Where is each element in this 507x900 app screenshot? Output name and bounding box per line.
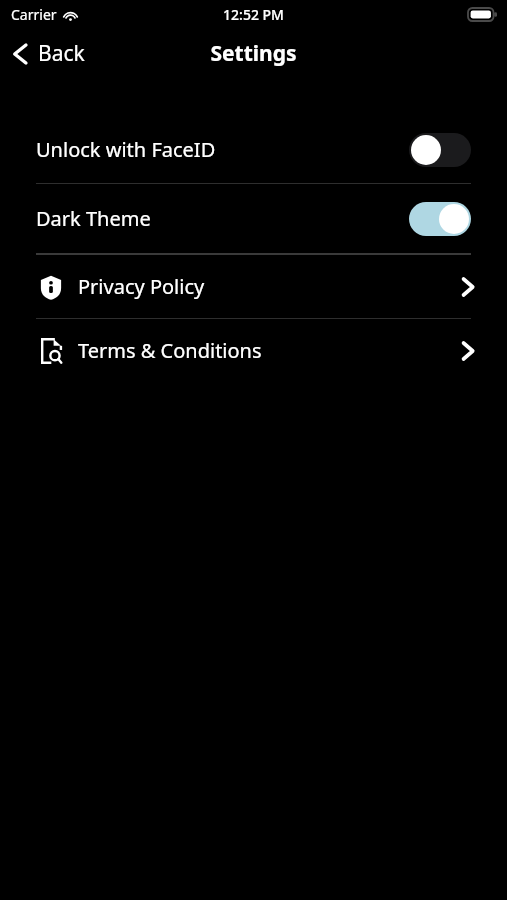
staticText: Privacy Policy	[78, 273, 461, 300]
staticText: Settings	[210, 39, 297, 68]
staticText: Carrier	[11, 5, 57, 24]
other: Privacy Policy	[40, 275, 62, 300]
other: Terms and Conditions	[40, 338, 62, 364]
button[interactable]: Dark Theme	[0, 184, 507, 253]
staticText: Terms & Conditions	[78, 337, 461, 364]
staticText: 12:52 PM	[223, 5, 284, 24]
staticText: Unlock with FaceID	[36, 136, 409, 163]
button[interactable]: Back	[0, 33, 99, 74]
button[interactable]: Privacy Policy	[0, 255, 507, 318]
button[interactable]: Unlock with FaceID	[0, 116, 507, 183]
button[interactable]: Terms and Conditions	[0, 319, 507, 382]
staticText: Dark Theme	[36, 205, 409, 232]
staticText: Back	[38, 39, 85, 68]
